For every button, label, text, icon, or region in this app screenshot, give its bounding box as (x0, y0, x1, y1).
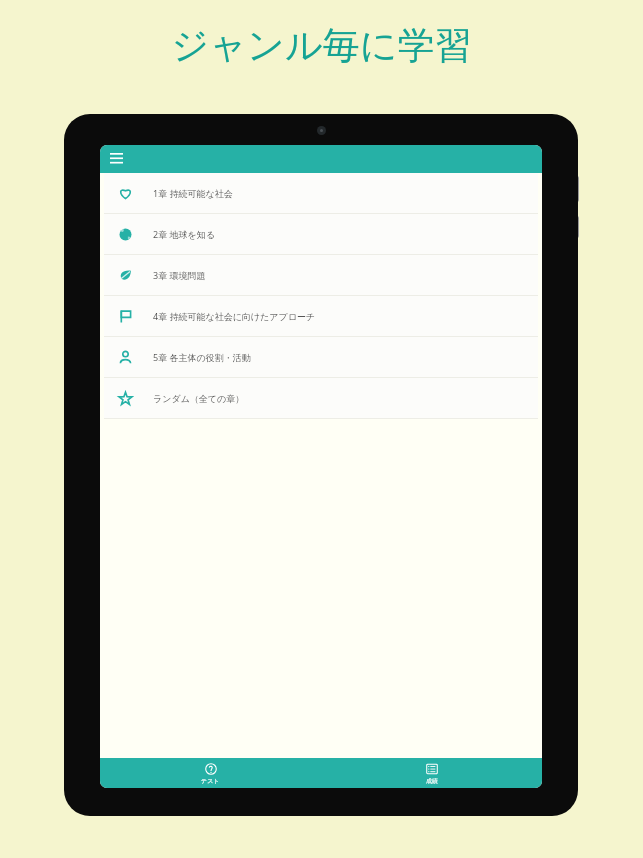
button[interactable]: 成績 (321, 758, 542, 788)
staticText: ランダム（全ての章） (153, 393, 245, 404)
button[interactable]: 5章 各主体の役割・活動 (104, 337, 538, 377)
staticText: 5章 各主体の役割・活動 (153, 351, 251, 363)
button[interactable]: 3章 環境問題 (104, 255, 538, 295)
button[interactable]: ランダム（全ての章） (104, 378, 538, 418)
staticText: 2章 地球を知る (153, 228, 215, 240)
staticText: ジャンル毎に学習 (171, 22, 472, 69)
staticText: 3章 環境問題 (153, 269, 206, 281)
staticText: 成績 (426, 777, 438, 785)
staticText: 4章 持続可能な社会に向けたアプローチ (153, 310, 316, 322)
button[interactable]: 4章 持続可能な社会に向けたアプローチ (104, 296, 538, 336)
button[interactable]: テスト (100, 758, 321, 788)
button[interactable]: 1章 持続可能な社会 (104, 173, 538, 213)
staticText: テスト (201, 777, 220, 785)
button[interactable]: 2章 地球を知る (104, 214, 538, 254)
staticText: 1章 持続可能な社会 (153, 187, 233, 199)
button[interactable]: Menu (105, 148, 127, 170)
